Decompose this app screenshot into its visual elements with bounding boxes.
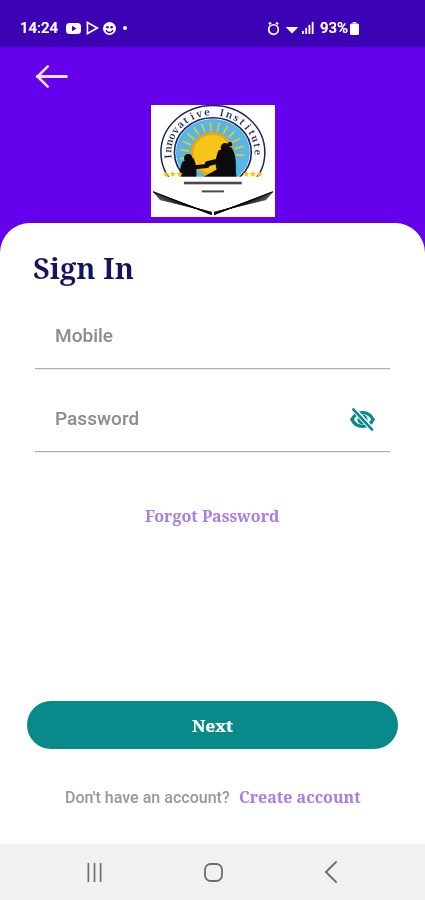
button[interactable]: Next [27,701,398,749]
staticText: Forgot Password [145,505,280,527]
button[interactable]: Show password [342,399,382,439]
staticText: 14:24 [20,19,59,37]
button[interactable]: Recent apps [70,848,118,896]
button[interactable]: Back [307,848,355,896]
button[interactable]: Create account [239,786,361,808]
button[interactable]: Forgot Password [135,500,290,532]
staticText: Create account [239,786,361,808]
staticText: Mobile [55,324,114,346]
staticText: 93% [320,19,349,37]
staticText: Password [55,407,140,429]
staticText: Sign In [33,248,135,287]
staticText: Don't have an account? [65,788,230,807]
button[interactable]: Home [189,848,237,896]
button[interactable]: Back [29,54,73,98]
staticText: Next [192,714,233,737]
